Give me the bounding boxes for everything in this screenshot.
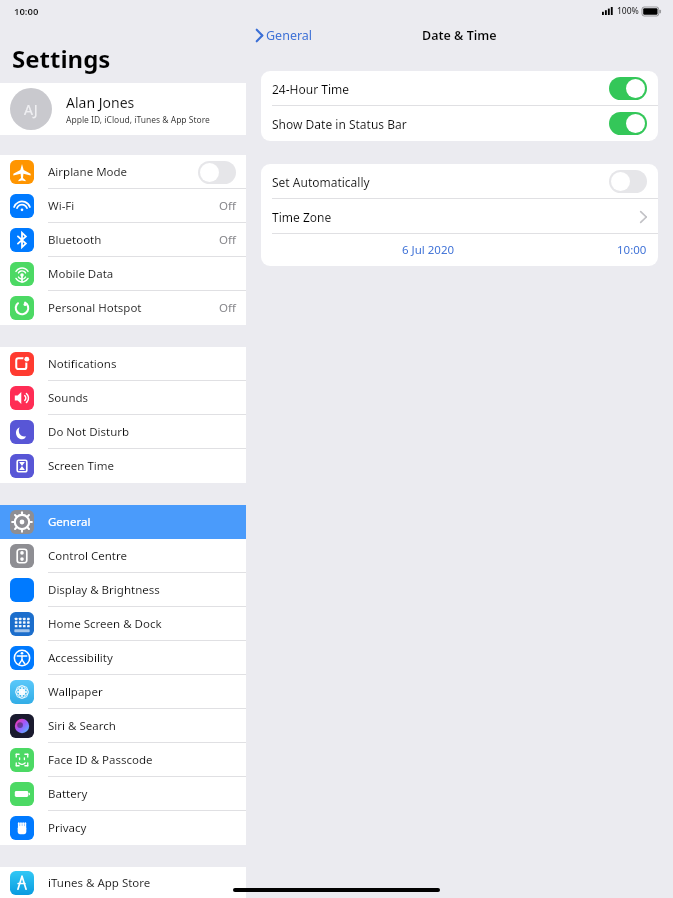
staticText: Personal Hotspot <box>48 300 219 316</box>
staticText: AJ <box>24 100 38 119</box>
button[interactable]: Set Automatically <box>609 170 647 193</box>
staticText: General <box>48 514 236 530</box>
button[interactable]: AJ <box>0 83 246 135</box>
button[interactable]: General <box>256 27 313 44</box>
staticText: 24-Hour Time <box>272 81 609 97</box>
button[interactable]: Show Date in Status Bar <box>261 106 658 141</box>
button[interactable]: Airplane Mode <box>198 161 236 184</box>
staticText: Mobile Data <box>48 266 236 282</box>
staticText: Time Zone <box>272 209 640 225</box>
staticText: Show Date in Status Bar <box>272 116 609 132</box>
staticText: Wi-Fi <box>48 198 219 214</box>
button[interactable]: General <box>0 505 246 539</box>
staticText: Date & Time <box>422 27 497 44</box>
staticText: Set Automatically <box>272 174 609 190</box>
button[interactable]: Privacy <box>0 811 246 845</box>
staticText: Wallpaper <box>48 684 236 700</box>
staticText: Face ID & Passcode <box>48 752 236 768</box>
button[interactable]: Screen Time <box>0 449 246 483</box>
staticText: Home Screen & Dock <box>48 616 236 632</box>
staticText: Display & Brightness <box>48 582 236 598</box>
button[interactable]: Do Not Disturb <box>0 415 246 449</box>
staticText: 100% <box>617 5 639 17</box>
button[interactable]: Personal Hotspot <box>0 291 246 325</box>
button[interactable]: 24-Hour Time <box>609 77 647 100</box>
staticText: Settings <box>12 42 111 75</box>
button[interactable]: Wi-Fi <box>0 189 246 223</box>
staticText: Screen Time <box>48 458 236 474</box>
button[interactable]: Siri & Search <box>0 709 246 743</box>
button[interactable]: Battery <box>0 777 246 811</box>
button[interactable]: Home Screen & Dock <box>0 607 246 641</box>
staticText: iTunes & App Store <box>48 875 236 891</box>
staticText: Alan Jones <box>66 93 135 112</box>
staticText: Accessibility <box>48 650 236 666</box>
button[interactable]: Display & Brightness <box>0 573 246 607</box>
button[interactable]: iTunes & App Store <box>0 867 246 898</box>
staticText: Airplane Mode <box>48 164 198 180</box>
staticText: Apple ID, iCloud, iTunes & App Store <box>66 114 210 126</box>
staticText: 6 Jul 2020 <box>402 242 455 258</box>
button[interactable]: Show Date in Status Bar <box>609 112 647 135</box>
staticText: Notifications <box>48 356 236 372</box>
button[interactable]: Sounds <box>0 381 246 415</box>
staticText: Battery <box>48 786 236 802</box>
staticText: Do Not Disturb <box>48 424 236 440</box>
button[interactable]: Accessibility <box>0 641 246 675</box>
staticText: Privacy <box>48 820 236 836</box>
button[interactable]: 6 Jul 2020 <box>261 234 658 266</box>
staticText: Siri & Search <box>48 718 236 734</box>
staticText: Off <box>219 232 236 248</box>
staticText: Off <box>219 198 236 214</box>
button[interactable]: Airplane Mode <box>0 155 246 189</box>
staticText: Bluetooth <box>48 232 219 248</box>
button[interactable]: Notifications <box>0 347 246 381</box>
staticText: Off <box>219 300 236 316</box>
staticText: Control Centre <box>48 548 236 564</box>
button[interactable]: Mobile Data <box>0 257 246 291</box>
staticText: 10:00 <box>14 5 39 18</box>
button[interactable]: 24-Hour Time <box>261 71 658 106</box>
button[interactable]: Control Centre <box>0 539 246 573</box>
button[interactable]: Set Automatically <box>261 164 658 199</box>
staticText: Sounds <box>48 390 236 406</box>
button[interactable]: Bluetooth <box>0 223 246 257</box>
button[interactable]: Time Zone <box>261 199 658 234</box>
staticText: General <box>266 27 313 44</box>
button[interactable]: Wallpaper <box>0 675 246 709</box>
button[interactable]: Face ID & Passcode <box>0 743 246 777</box>
staticText: 10:00 <box>617 242 647 258</box>
